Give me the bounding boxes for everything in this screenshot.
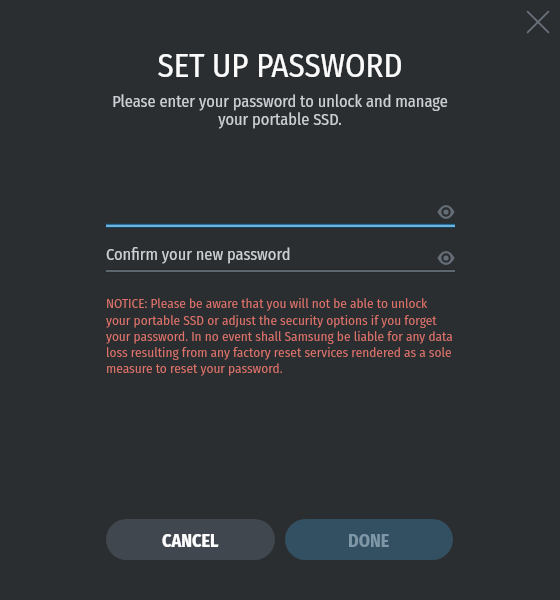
button[interactable]: Show password bbox=[433, 245, 459, 271]
staticText: CANCEL bbox=[162, 530, 219, 552]
button[interactable]: Close bbox=[518, 2, 558, 42]
staticText: NOTICE: Please be aware that you will no… bbox=[106, 296, 453, 376]
button[interactable]: Show password bbox=[433, 199, 459, 225]
staticText: Please enter your password to unlock and… bbox=[0, 92, 560, 130]
staticText: Confirm your new password bbox=[106, 245, 291, 265]
staticText: DONE bbox=[348, 530, 390, 552]
button[interactable]: CANCEL bbox=[106, 519, 275, 560]
staticText: SET UP PASSWORD bbox=[0, 46, 560, 85]
button[interactable] bbox=[106, 196, 455, 228]
button[interactable]: Confirm your new password bbox=[106, 242, 455, 273]
button[interactable]: DONE bbox=[285, 519, 453, 560]
